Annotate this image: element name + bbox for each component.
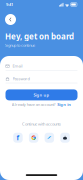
- button[interactable]: Back: [5, 14, 16, 25]
- staticText: Password: [12, 76, 29, 81]
- staticText: Hey, get on board: [5, 31, 74, 42]
- staticText: 9:41: [6, 2, 13, 7]
- button[interactable]: Sign up: [5, 89, 77, 100]
- staticText: f: [16, 133, 19, 142]
- staticText: Sign in: [57, 102, 71, 107]
- button[interactable]: Continue with Google: [29, 133, 38, 143]
- staticText: Email: [12, 63, 22, 69]
- staticText: Already have an account?: [12, 102, 56, 107]
- staticText: Sign up: [33, 92, 49, 97]
- button[interactable]: Continue with Twitter: [45, 133, 54, 143]
- button[interactable]: Already have an account?: [12, 101, 71, 107]
- staticText: Signup to continue: [5, 43, 35, 48]
- staticText: Continue with accounts: [22, 121, 61, 127]
- button[interactable]: Continue with Facebook: [13, 133, 23, 143]
- button[interactable]: Continue with Apple: [60, 133, 70, 143]
